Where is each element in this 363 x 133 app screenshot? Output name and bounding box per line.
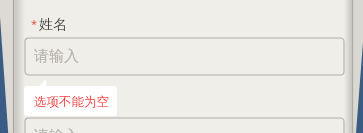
button[interactable]: 请输入 xyxy=(25,38,344,75)
staticText: 请输入 xyxy=(34,47,79,66)
staticText: * xyxy=(31,16,38,31)
staticText: 姓名 xyxy=(39,16,67,34)
button[interactable]: 请输入 xyxy=(25,118,344,133)
staticText: 选项不能为空 xyxy=(34,94,109,110)
staticText: 请输入 xyxy=(34,127,79,133)
